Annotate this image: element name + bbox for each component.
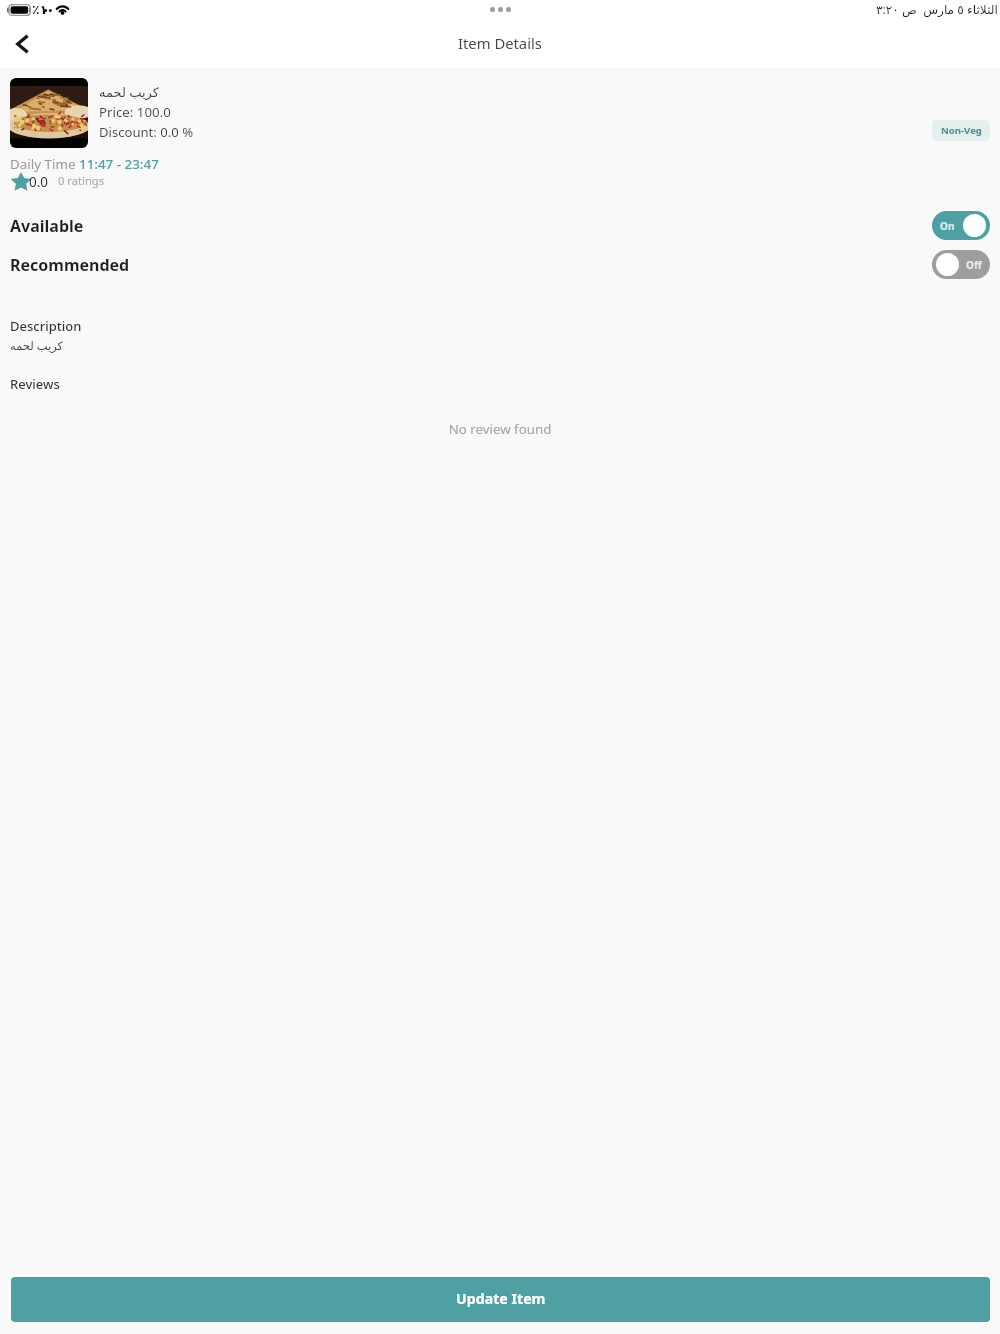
button[interactable]: Available on (932, 211, 990, 240)
staticText: No review found (0, 420, 1000, 438)
staticText: On (940, 219, 955, 233)
staticText: Recommended (10, 254, 130, 276)
staticText: Off (966, 258, 982, 272)
button[interactable]: كريب لحمه (0, 74, 1000, 152)
button[interactable]: Non-Veg (932, 120, 990, 141)
staticText: Reviews (10, 375, 60, 393)
button[interactable]: Update Item (11, 1277, 990, 1322)
staticText: 0.0 (29, 173, 49, 191)
staticText: 11:47 - 23:47 (79, 155, 159, 173)
staticText: الثلاثاء ٥ مارس ص ٣:٢٠ (876, 1, 998, 18)
staticText: 0 ratings (58, 173, 105, 188)
staticText: كريب لحمه (10, 338, 64, 354)
staticText: Available (10, 215, 84, 237)
staticText: Item Details (458, 33, 542, 53)
staticText: ٪١ (32, 2, 48, 17)
button[interactable]: Back (0, 26, 44, 62)
staticText: Price: 100.0 (99, 103, 171, 121)
staticText: Non-Veg (941, 124, 982, 137)
staticText: Discount: 0.0 % (99, 123, 194, 141)
button[interactable]: Available (0, 207, 1000, 244)
button[interactable]: Recommended (0, 246, 1000, 283)
button[interactable]: Recommended off (932, 250, 990, 279)
staticText: Description (10, 317, 82, 335)
staticText: Update Item (456, 1289, 546, 1308)
staticText: كريب لحمه (99, 83, 159, 101)
staticText: Daily Time (10, 155, 79, 173)
